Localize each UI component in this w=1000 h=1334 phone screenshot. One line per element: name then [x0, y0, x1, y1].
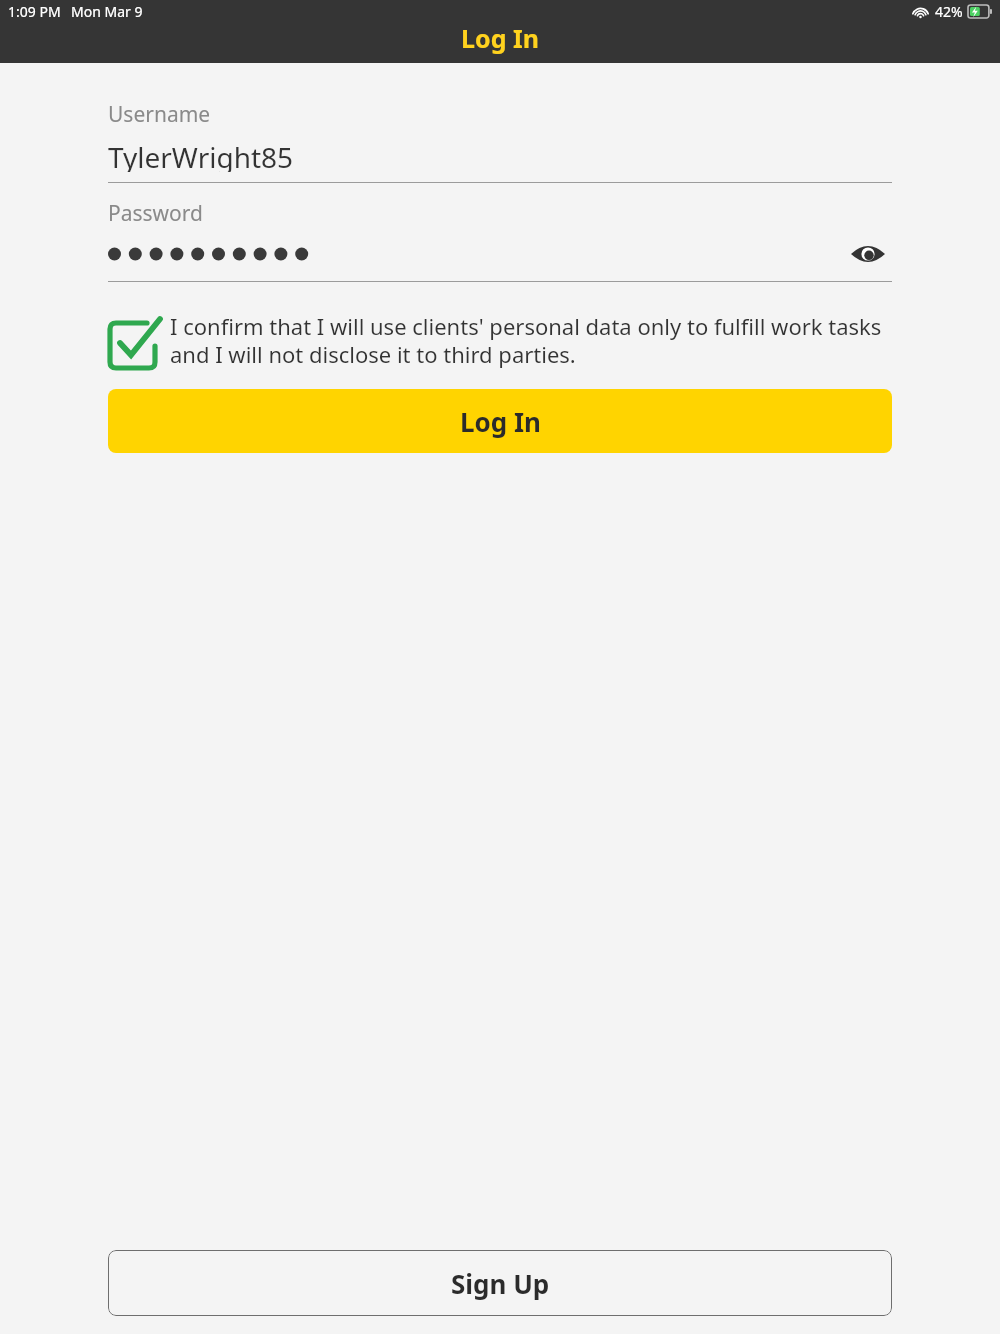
staticText: Sign Up	[451, 1266, 550, 1301]
staticText: Log In	[461, 21, 539, 55]
staticText: I confirm that I will use clients' perso…	[170, 311, 892, 369]
button[interactable]: Sign Up	[108, 1250, 892, 1316]
staticText: 1:09 PM	[8, 2, 61, 21]
staticText: Username	[108, 100, 211, 129]
button[interactable]: I confirm that I will use clients' perso…	[108, 311, 892, 369]
staticText: Mon Mar 9	[71, 2, 143, 21]
staticText: 42%	[935, 2, 963, 21]
staticText: Log In	[460, 404, 541, 439]
button[interactable]: Log In	[108, 389, 892, 453]
staticText: TylerWright85	[108, 138, 294, 172]
staticText: Password	[108, 199, 203, 228]
button[interactable]: Show password	[844, 237, 892, 271]
